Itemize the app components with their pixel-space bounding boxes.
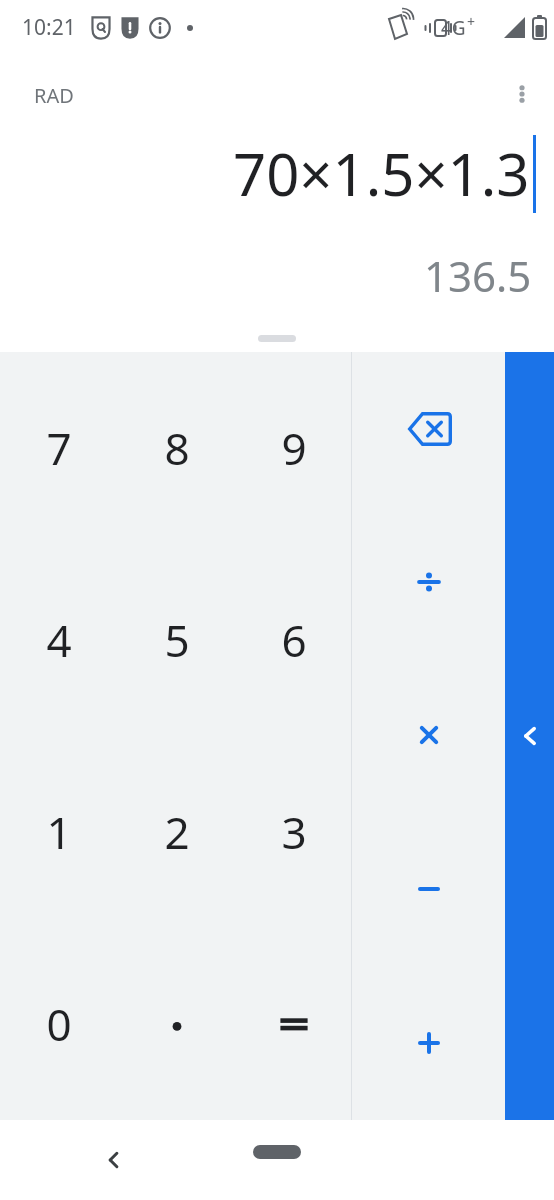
staticText: 4G [441,15,466,41]
staticText: 6 [281,610,307,670]
button[interactable]: 1 [0,736,118,928]
button[interactable]: 6 [235,544,352,736]
button[interactable]: 4 [0,544,118,736]
button[interactable]: + [352,966,505,1120]
button[interactable]: − [352,812,505,966]
button[interactable]: More options [498,70,546,118]
button[interactable]: Back [90,1136,138,1184]
staticText: 136.5 [424,247,532,304]
staticText: 1 [46,802,72,862]
button[interactable]: × [352,658,505,812]
staticText: 4 [46,610,72,670]
button[interactable]: Drag handle [258,335,296,342]
staticText: 70×1.5×1.3 [233,134,530,213]
staticText: + [467,12,476,31]
button[interactable] [118,928,235,1120]
staticText: 0 [46,994,72,1054]
button[interactable] [235,928,352,1120]
button[interactable]: 5 [118,544,235,736]
staticText: 10:21 [22,13,76,42]
staticText: RAD [34,82,74,109]
staticText: 3 [281,802,307,862]
button[interactable]: 7 [0,352,118,544]
button[interactable]: Backspace [352,352,505,505]
staticText: 9 [281,418,307,478]
button[interactable]: 8 [118,352,235,544]
button[interactable]: 9 [235,352,352,544]
button[interactable]: Home [253,1145,301,1159]
button[interactable]: 0 [0,928,118,1120]
staticText: 5 [164,610,190,670]
button[interactable]: 3 [235,736,352,928]
button[interactable]: Open advanced pad [505,352,554,1120]
staticText: 2 [164,802,190,862]
button[interactable]: RAD [18,76,90,115]
button[interactable]: 2 [118,736,235,928]
staticText: 8 [164,418,190,478]
button[interactable]: ÷ [352,505,505,658]
staticText: 7 [46,418,72,478]
